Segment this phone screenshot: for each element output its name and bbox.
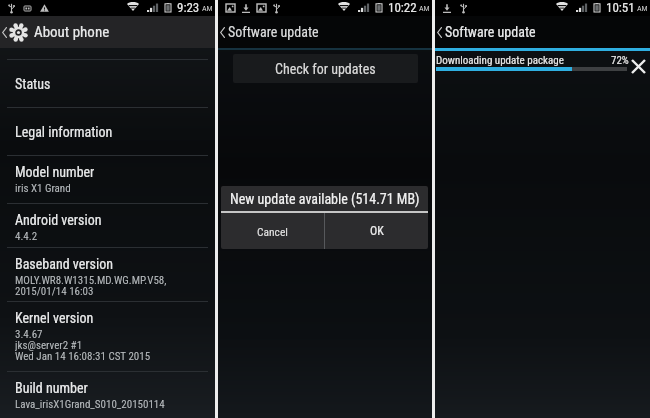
staticText: Model number xyxy=(15,164,95,180)
staticText: Cancel xyxy=(257,225,288,238)
staticText: Wed Jan 14 16:08:31 CST 2015 xyxy=(15,350,151,362)
staticText: Software update xyxy=(228,24,319,40)
button[interactable]: Check for updates xyxy=(233,54,418,83)
staticText: Lava_irisX1Grand_S010_20150114 xyxy=(15,398,165,410)
staticText: iris X1 Grand xyxy=(15,182,71,194)
staticText: 4.4.2 xyxy=(15,230,38,242)
staticText: 10:51 xyxy=(606,0,635,14)
staticText: AM xyxy=(637,4,648,13)
staticText: 2015/01/14 16:03 xyxy=(15,285,94,297)
button[interactable]: Model number xyxy=(0,156,215,203)
staticText: AM xyxy=(419,4,430,13)
button[interactable]: About phone xyxy=(0,16,215,48)
button[interactable]: Baseband version xyxy=(0,248,215,301)
staticText: 10:22 xyxy=(388,0,417,14)
staticText: Downloading update package xyxy=(436,54,564,67)
staticText: Android version xyxy=(15,212,102,228)
staticText: 3.4.67 xyxy=(15,328,43,340)
button[interactable]: Status xyxy=(0,60,215,107)
staticText: New update available (514.71 MB) xyxy=(230,191,420,207)
staticText: 9:23 xyxy=(177,0,200,14)
button[interactable]: Cancel xyxy=(221,213,324,249)
button[interactable]: Android version xyxy=(0,204,215,247)
button[interactable]: Software update xyxy=(435,16,650,48)
staticText: OK xyxy=(370,224,384,238)
staticText: Kernel version xyxy=(15,310,94,326)
staticText: MOLY.WR8.W1315.MD.WG.MP.V58, xyxy=(15,274,167,286)
button[interactable]: Legal information xyxy=(0,108,215,155)
staticText: 72% xyxy=(611,54,629,67)
staticText: Legal information xyxy=(15,124,113,140)
staticText: Check for updates xyxy=(275,61,376,77)
button[interactable]: Cancel download xyxy=(625,53,650,79)
staticText: Baseband version xyxy=(15,256,113,272)
staticText: Status xyxy=(15,76,51,92)
staticText: AM xyxy=(202,4,213,13)
staticText: Build number xyxy=(15,380,88,396)
button[interactable]: Software update xyxy=(218,16,432,48)
button[interactable]: OK xyxy=(325,213,428,249)
button[interactable]: Build number xyxy=(0,372,215,418)
staticText: jks@server2 #1 xyxy=(15,339,83,351)
staticText: Software update xyxy=(445,24,536,40)
button[interactable]: Kernel version xyxy=(0,302,215,371)
staticText: About phone xyxy=(34,23,110,41)
